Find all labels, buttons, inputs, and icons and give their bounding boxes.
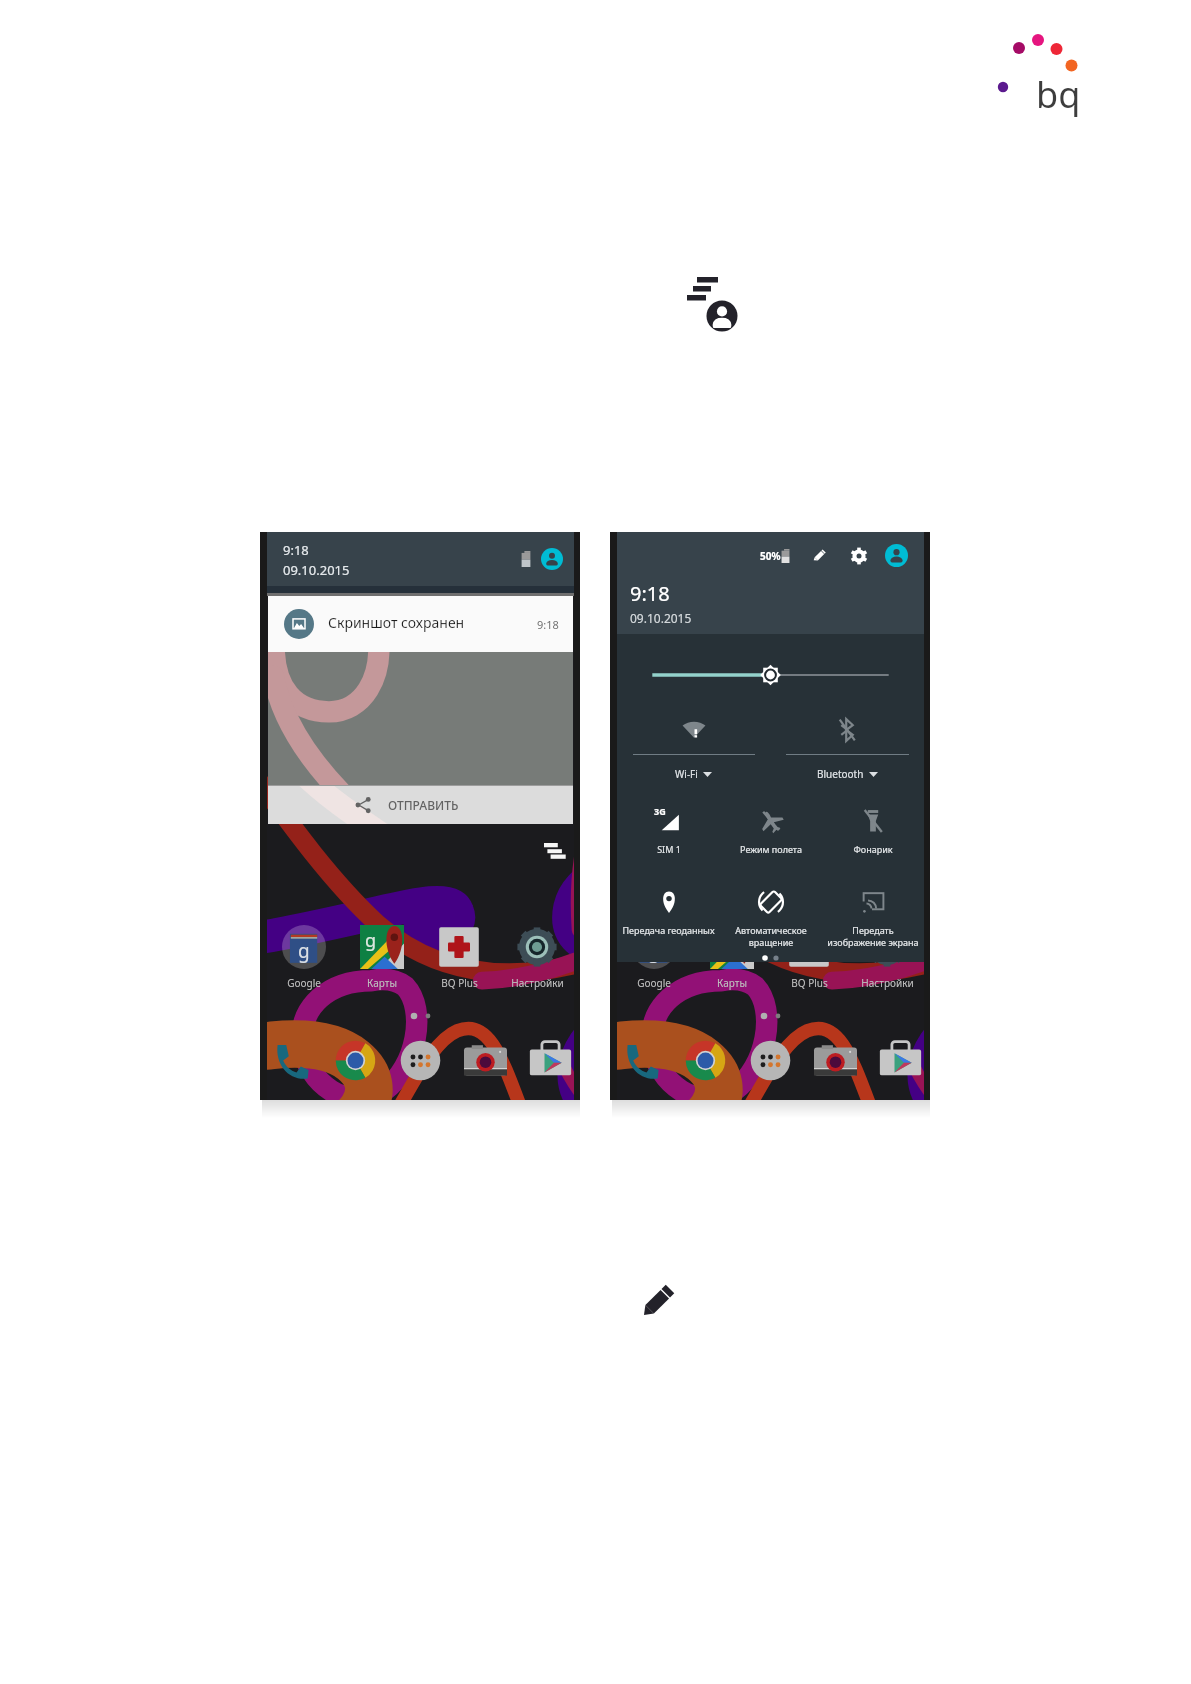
button[interactable]: Chrome (684, 1039, 727, 1082)
staticText: 9:18 (630, 580, 670, 607)
button[interactable]: Edit (810, 547, 828, 565)
staticText: 9:18 (537, 617, 559, 632)
staticText: Bluetooth (817, 767, 864, 781)
staticText: Передача геоданных (622, 924, 715, 936)
button[interactable]: BQ Plus (423, 925, 495, 990)
staticText: Передать изображение экрана (822, 924, 924, 948)
button[interactable]: Camera (814, 1039, 857, 1082)
button[interactable]: Edit (634, 1278, 680, 1324)
button[interactable]: Передача геоданных (617, 889, 720, 936)
button[interactable]: Chrome (334, 1039, 377, 1082)
staticText: 3G (654, 805, 666, 817)
staticText: g (365, 928, 377, 953)
button[interactable]: User (885, 544, 908, 567)
staticText: 9:18 (283, 541, 309, 559)
button[interactable]: Настройки (501, 925, 573, 990)
button[interactable]: g (618, 925, 690, 990)
staticText: Скриншот сохранен (328, 613, 465, 632)
button[interactable]: Play Store (879, 1039, 922, 1082)
button[interactable]: g (696, 925, 768, 990)
staticText: Режим полета (740, 843, 802, 855)
button[interactable]: Автоматическое вращение (720, 889, 822, 948)
staticText: Wi-Fi (675, 767, 698, 781)
staticText: 09.10.2015 (283, 561, 350, 579)
staticText: bq (1036, 70, 1081, 119)
button[interactable]: Wi-Fi (617, 714, 770, 781)
staticText: g (648, 938, 660, 964)
staticText: Карты (717, 976, 747, 990)
button[interactable]: 3G (617, 808, 720, 855)
staticText: BQ Plus (441, 976, 478, 990)
button[interactable]: Notifications and user (672, 268, 752, 338)
button[interactable]: Настройки (851, 925, 923, 990)
button[interactable]: Play Store (529, 1039, 572, 1082)
staticText: Карты (367, 976, 397, 990)
other: Notifications (544, 843, 567, 860)
staticText: Google (637, 976, 671, 990)
staticText: Google (287, 976, 321, 990)
staticText: Фонарик (853, 843, 893, 855)
button[interactable]: Settings (849, 546, 869, 566)
staticText: SIM 1 (657, 843, 681, 855)
button[interactable]: Apps (749, 1039, 792, 1082)
staticText: 09.10.2015 (630, 610, 692, 626)
staticText: Настройки (861, 976, 914, 990)
button[interactable]: Режим полета (720, 808, 822, 855)
button[interactable]: Фонарик (822, 808, 924, 855)
staticText: ОТПРАВИТЬ (388, 797, 459, 813)
button[interactable]: Camera (464, 1039, 507, 1082)
button[interactable]: BQ Plus (773, 925, 845, 990)
staticText: 50% (760, 549, 781, 563)
staticText: Автоматическое вращение (720, 924, 822, 948)
button[interactable]: g (268, 925, 340, 990)
button[interactable]: g (346, 925, 418, 990)
button[interactable]: ОТПРАВИТЬ (268, 786, 573, 824)
staticText: g (298, 938, 310, 964)
button[interactable]: Скриншот сохранен (268, 596, 573, 652)
button[interactable]: Apps (399, 1039, 442, 1082)
staticText: Настройки (511, 976, 564, 990)
staticText: BQ Plus (791, 976, 828, 990)
button[interactable]: Phone (269, 1039, 312, 1082)
button[interactable]: Передать изображение экрана (822, 889, 924, 948)
button[interactable]: Phone (619, 1039, 662, 1082)
button[interactable]: Bluetooth (770, 714, 924, 781)
